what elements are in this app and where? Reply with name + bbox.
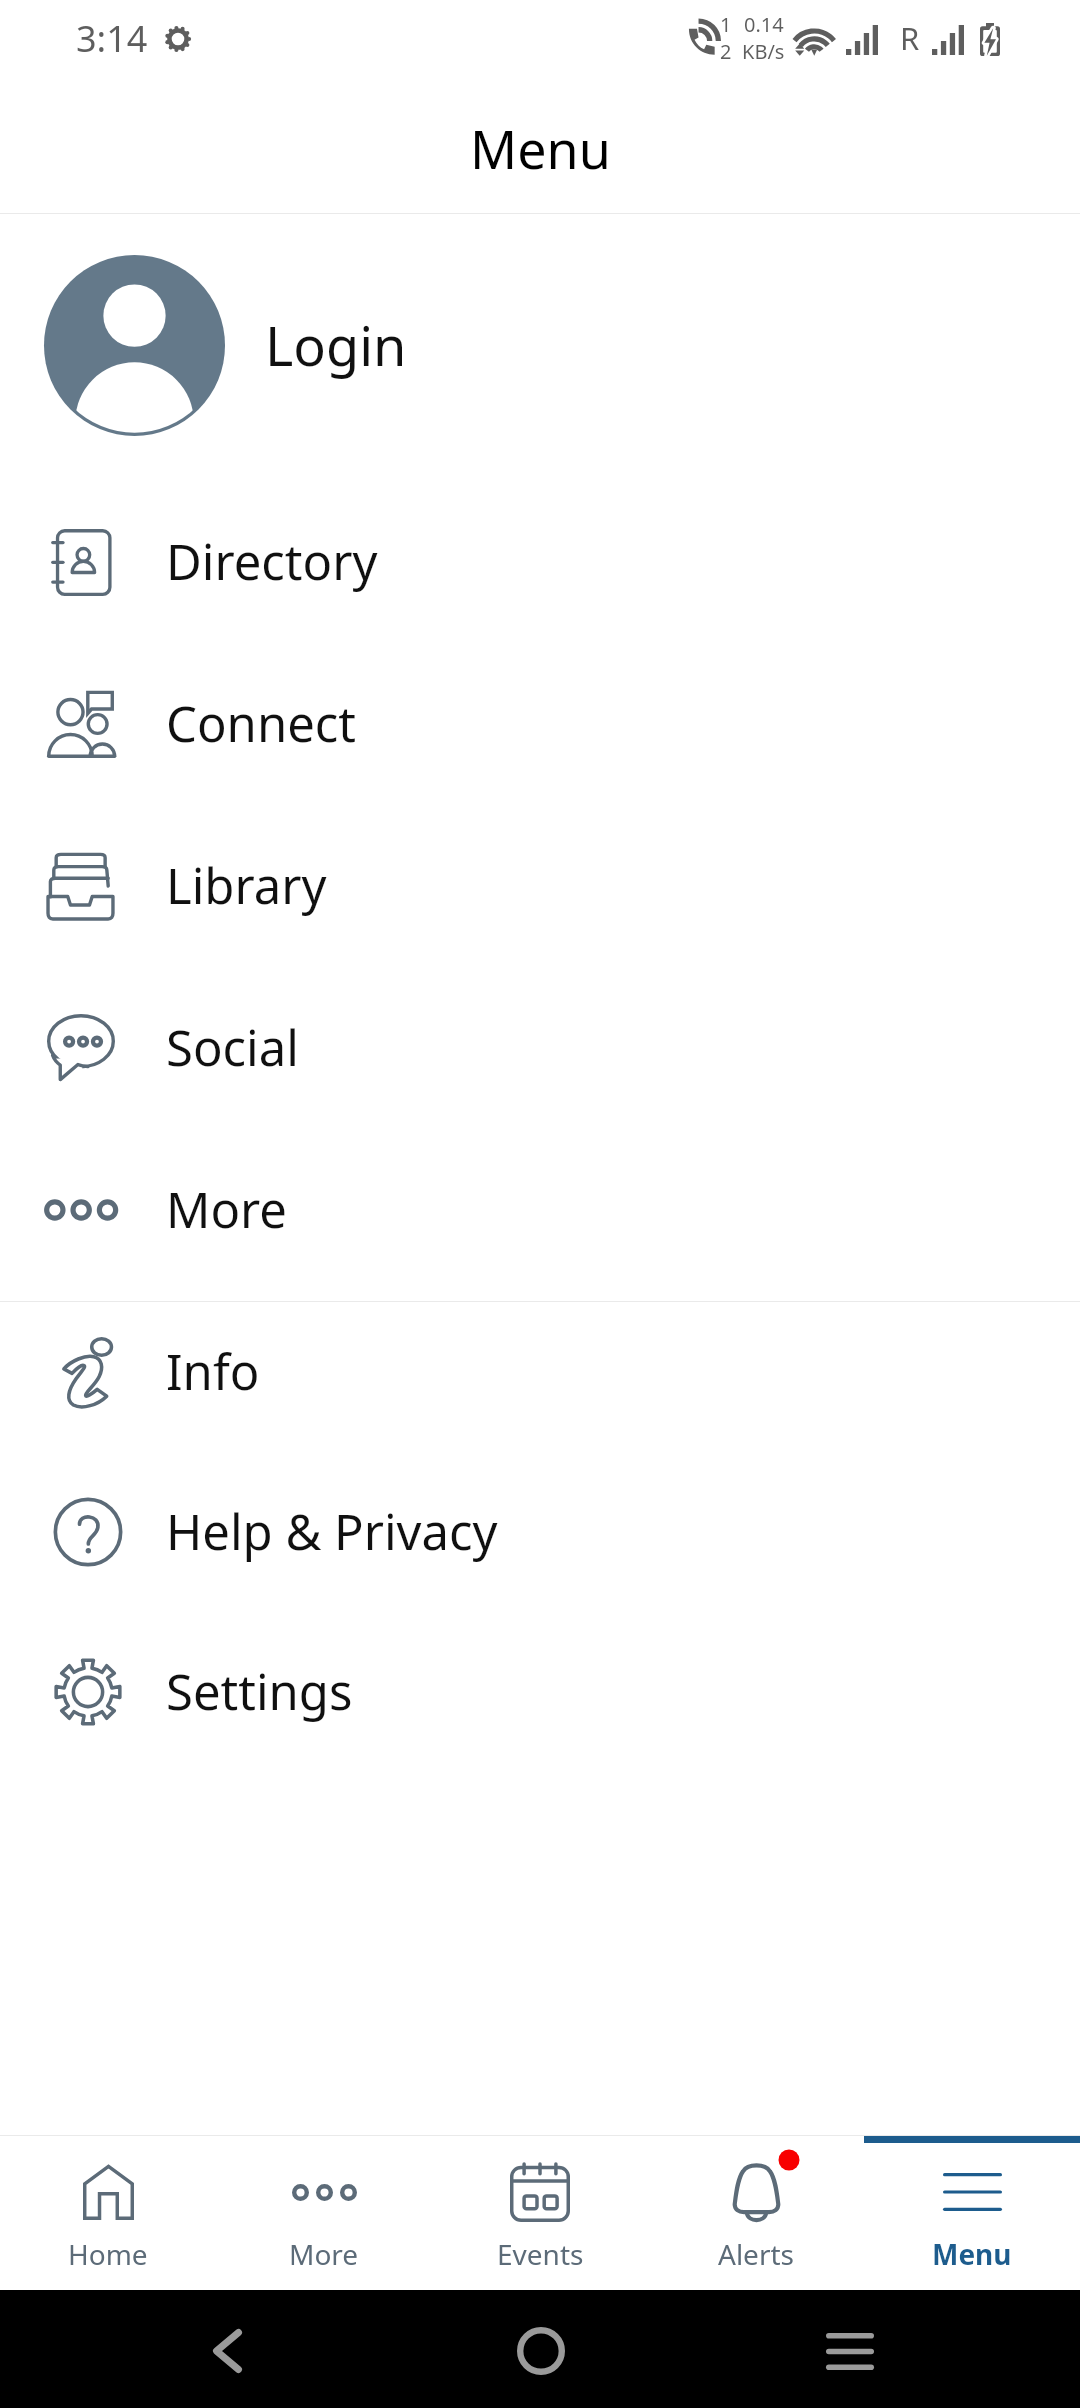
- staticText: Connect: [166, 690, 357, 757]
- staticText: 3:14: [76, 14, 148, 63]
- staticText: Alerts: [718, 2235, 794, 2273]
- staticText: Home: [68, 2235, 148, 2273]
- staticText: Social: [166, 1014, 299, 1081]
- staticText: R: [900, 17, 920, 59]
- button[interactable]: Social: [0, 967, 1080, 1128]
- staticText: Help & Privacy: [166, 1498, 498, 1565]
- staticText: Directory: [166, 528, 378, 595]
- staticText: Settings: [166, 1658, 353, 1725]
- button[interactable]: Connect: [0, 643, 1080, 804]
- button[interactable]: Info: [0, 1291, 1080, 1452]
- staticText: Library: [166, 852, 327, 919]
- button[interactable]: Menu: [864, 2136, 1080, 2290]
- button[interactable]: More: [216, 2136, 432, 2290]
- staticText: 2: [720, 38, 732, 65]
- button[interactable]: Library: [0, 805, 1080, 966]
- staticText: Menu: [470, 113, 611, 184]
- button[interactable]: Directory: [0, 481, 1080, 642]
- button[interactable]: Recent apps: [790, 2292, 910, 2408]
- button[interactable]: Login: [0, 211, 1080, 479]
- staticText: KB/s: [742, 38, 785, 65]
- button[interactable]: More: [0, 1129, 1080, 1290]
- staticText: More: [289, 2235, 359, 2273]
- button[interactable]: Home: [0, 2136, 216, 2290]
- button[interactable]: Events: [432, 2136, 648, 2290]
- button[interactable]: Back: [167, 2292, 287, 2408]
- button[interactable]: Alerts: [648, 2136, 864, 2290]
- button[interactable]: Home: [481, 2292, 601, 2408]
- staticText: 1: [720, 11, 732, 38]
- button[interactable]: Help & Privacy: [0, 1451, 1080, 1612]
- staticText: 0.14: [744, 11, 784, 38]
- staticText: Menu: [932, 2235, 1012, 2273]
- staticText: Login: [265, 308, 407, 382]
- staticText: More: [166, 1176, 287, 1243]
- staticText: Info: [166, 1338, 260, 1405]
- button[interactable]: Settings: [0, 1611, 1080, 1772]
- staticText: Events: [497, 2235, 584, 2273]
